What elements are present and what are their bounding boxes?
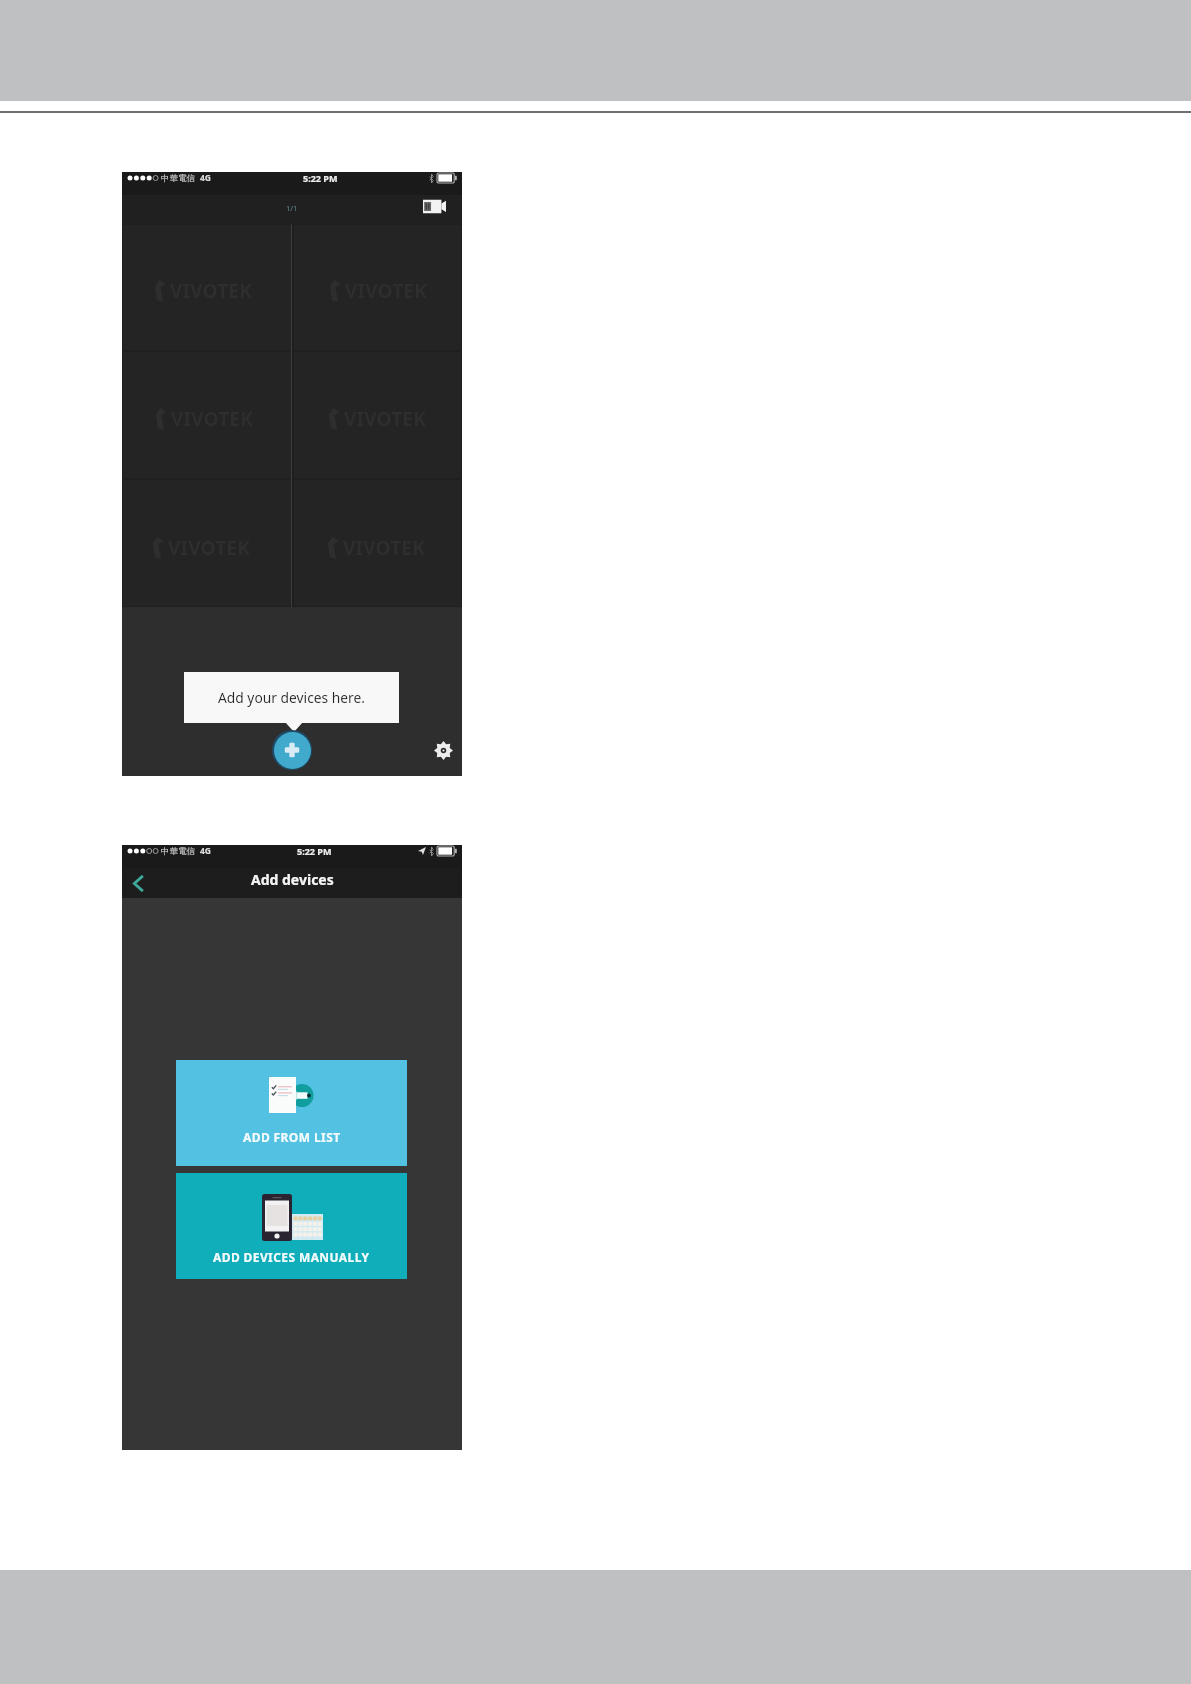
button[interactable]: ADD FROM LIST bbox=[176, 1060, 407, 1166]
staticText: 4G bbox=[200, 172, 212, 184]
staticText: 5:22 PM bbox=[297, 845, 332, 857]
button[interactable]: Back bbox=[126, 871, 150, 895]
staticText: Add your devices here. bbox=[218, 688, 365, 707]
staticText: Add devices bbox=[251, 870, 334, 889]
staticText: VIVOTEK bbox=[171, 406, 253, 432]
staticText: VIVOTEK bbox=[168, 535, 250, 561]
staticText: VIVOTEK bbox=[343, 535, 425, 561]
staticText: 5:22 PM bbox=[303, 172, 338, 184]
staticText: VIVOTEK bbox=[170, 278, 252, 304]
staticText: 中華電信 bbox=[161, 173, 195, 184]
staticText: VIVOTEK bbox=[345, 278, 427, 304]
button[interactable]: Live view bbox=[417, 194, 450, 219]
button[interactable]: Add device bbox=[272, 730, 312, 770]
staticText: ADD FROM LIST bbox=[243, 1129, 341, 1145]
staticText: 4G bbox=[200, 845, 212, 857]
button[interactable]: ADD DEVICES MANUALLY bbox=[176, 1173, 407, 1279]
staticText: 中華電信 bbox=[161, 846, 195, 857]
staticText: ADD DEVICES MANUALLY bbox=[213, 1249, 370, 1265]
button[interactable]: Settings bbox=[432, 739, 454, 761]
staticText: 1/1 bbox=[286, 203, 298, 213]
staticText: VIVOTEK bbox=[344, 406, 426, 432]
